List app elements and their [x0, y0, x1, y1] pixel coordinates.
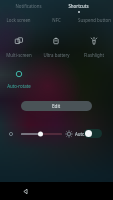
- button[interactable]: Flashlight: [90, 37, 98, 45]
- staticText: Suspend button: [78, 17, 111, 23]
- button[interactable]: Back: [0, 182, 50, 200]
- button[interactable]: Shortcuts: [68, 3, 89, 13]
- staticText: Edit: [52, 103, 61, 109]
- staticText: Shortcuts: [68, 3, 89, 9]
- staticText: Flashlight: [84, 52, 104, 58]
- staticText: NFC: [52, 17, 61, 23]
- button[interactable]: Ultra battery: [52, 37, 60, 45]
- staticText: Ultra battery: [43, 52, 70, 58]
- button[interactable]: Edit: [21, 101, 92, 111]
- staticText: Lock screen: [6, 17, 31, 23]
- button[interactable]: Brightness low: [7, 130, 15, 138]
- button[interactable]: Notifications: [15, 3, 42, 9]
- staticText: Auto: [75, 131, 85, 137]
- button[interactable]: Auto brightness: [65, 130, 73, 138]
- staticText: Multi-screen: [6, 52, 32, 58]
- staticText: Auto-rotate: [7, 83, 31, 89]
- button[interactable]: Auto brightness toggle: [84, 129, 102, 138]
- button[interactable]: Multi-screen: [15, 37, 23, 45]
- button[interactable]: Auto-rotate: [15, 70, 23, 78]
- staticText: Notifications: [15, 3, 42, 9]
- button[interactable]: Brightness slider: [20, 129, 63, 139]
